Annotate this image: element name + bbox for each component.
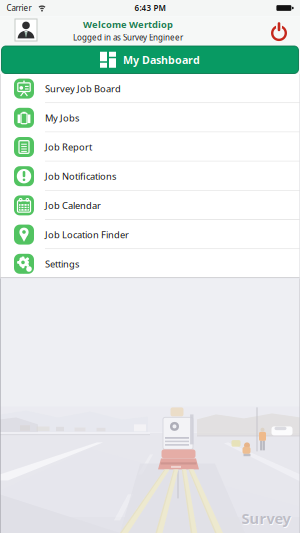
button[interactable]: Job Report <box>0 132 300 162</box>
button[interactable]: Survey Job Board <box>0 74 300 103</box>
button[interactable]: Job Calendar <box>0 191 300 220</box>
button[interactable]: My Jobs <box>0 103 300 132</box>
staticText: Job Notifications <box>45 170 116 182</box>
staticText: My Dashboard <box>123 53 200 67</box>
staticText: Logged in as Survey Engineer <box>73 32 183 43</box>
button[interactable]: My Dashboard <box>1 46 298 73</box>
staticText: Job Calendar <box>45 199 101 212</box>
button[interactable]: Settings <box>0 249 300 278</box>
button[interactable]: Log out <box>267 18 291 42</box>
staticText: Welcome Wertdiop <box>83 18 173 31</box>
staticText: 6:43 PM <box>134 3 165 13</box>
staticText: Job Report <box>45 141 92 153</box>
button[interactable]: Job Location Finder <box>0 220 300 249</box>
staticText: My Jobs <box>45 112 79 124</box>
staticText: Survey <box>241 509 290 528</box>
staticText: Survey <box>242 509 291 529</box>
staticText: Carrier <box>6 3 31 13</box>
button[interactable]: Profile <box>15 19 37 41</box>
staticText: Survey Job Board <box>45 82 121 95</box>
staticText: Job Location Finder <box>45 228 129 241</box>
button[interactable]: Job Notifications <box>0 162 300 191</box>
staticText: Settings <box>45 258 79 270</box>
